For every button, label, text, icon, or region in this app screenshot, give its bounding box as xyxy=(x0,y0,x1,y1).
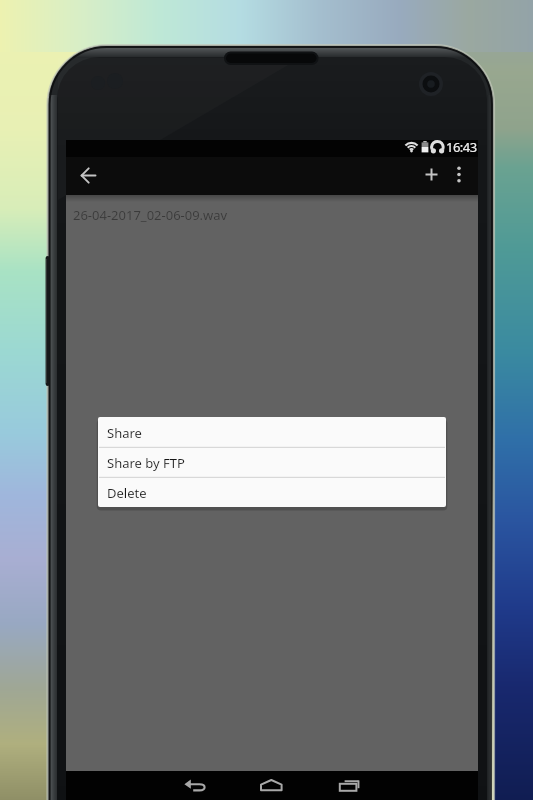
button[interactable] xyxy=(178,771,214,800)
staticText: Share xyxy=(107,424,142,442)
button[interactable] xyxy=(331,771,367,800)
button[interactable]: Delete xyxy=(98,477,446,507)
button[interactable] xyxy=(253,771,289,800)
staticText: Delete xyxy=(107,484,147,502)
button[interactable] xyxy=(415,158,448,191)
button[interactable] xyxy=(72,159,106,193)
staticText: Share by FTP xyxy=(107,454,185,472)
staticText: 26-04-2017_02-06-09.wav xyxy=(73,206,228,224)
button[interactable]: Share by FTP xyxy=(98,447,446,477)
button[interactable] xyxy=(445,158,473,191)
staticText: 16:43 xyxy=(446,138,477,156)
button[interactable]: Share xyxy=(98,417,446,447)
